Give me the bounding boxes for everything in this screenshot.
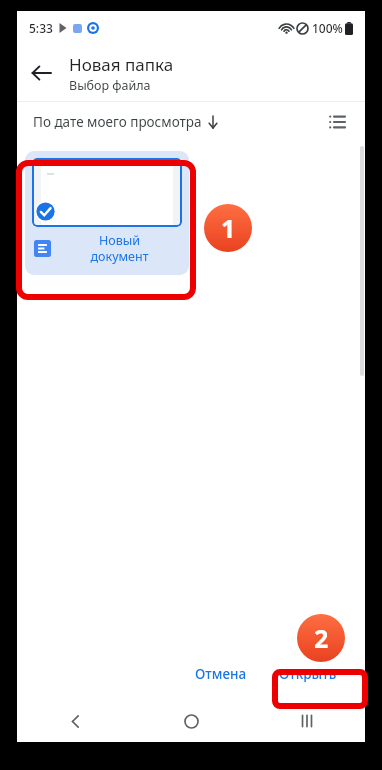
staticText: 1 xyxy=(221,211,236,245)
staticText: По дате моего просмотра xyxy=(33,113,202,131)
button[interactable]: Home xyxy=(133,700,249,742)
staticText: 2 xyxy=(314,621,329,655)
staticText: Выбор файла xyxy=(69,77,151,94)
staticText: Открыть xyxy=(279,665,337,683)
button[interactable]: List view xyxy=(321,106,353,138)
staticText: 100% xyxy=(312,20,343,36)
button[interactable]: Back xyxy=(17,700,133,742)
staticText: Новый документ xyxy=(57,232,182,264)
button[interactable]: Отмена xyxy=(185,658,257,690)
button[interactable]: Новый документ xyxy=(25,151,189,275)
button[interactable]: По дате моего просмотра xyxy=(29,109,223,135)
staticText: Отмена xyxy=(195,665,247,683)
button[interactable]: Back xyxy=(17,49,65,97)
staticText: Новая папка xyxy=(69,53,174,76)
button[interactable]: Recents xyxy=(249,700,365,742)
button[interactable]: Открыть xyxy=(269,658,347,690)
staticText: 5:33 xyxy=(29,20,53,36)
